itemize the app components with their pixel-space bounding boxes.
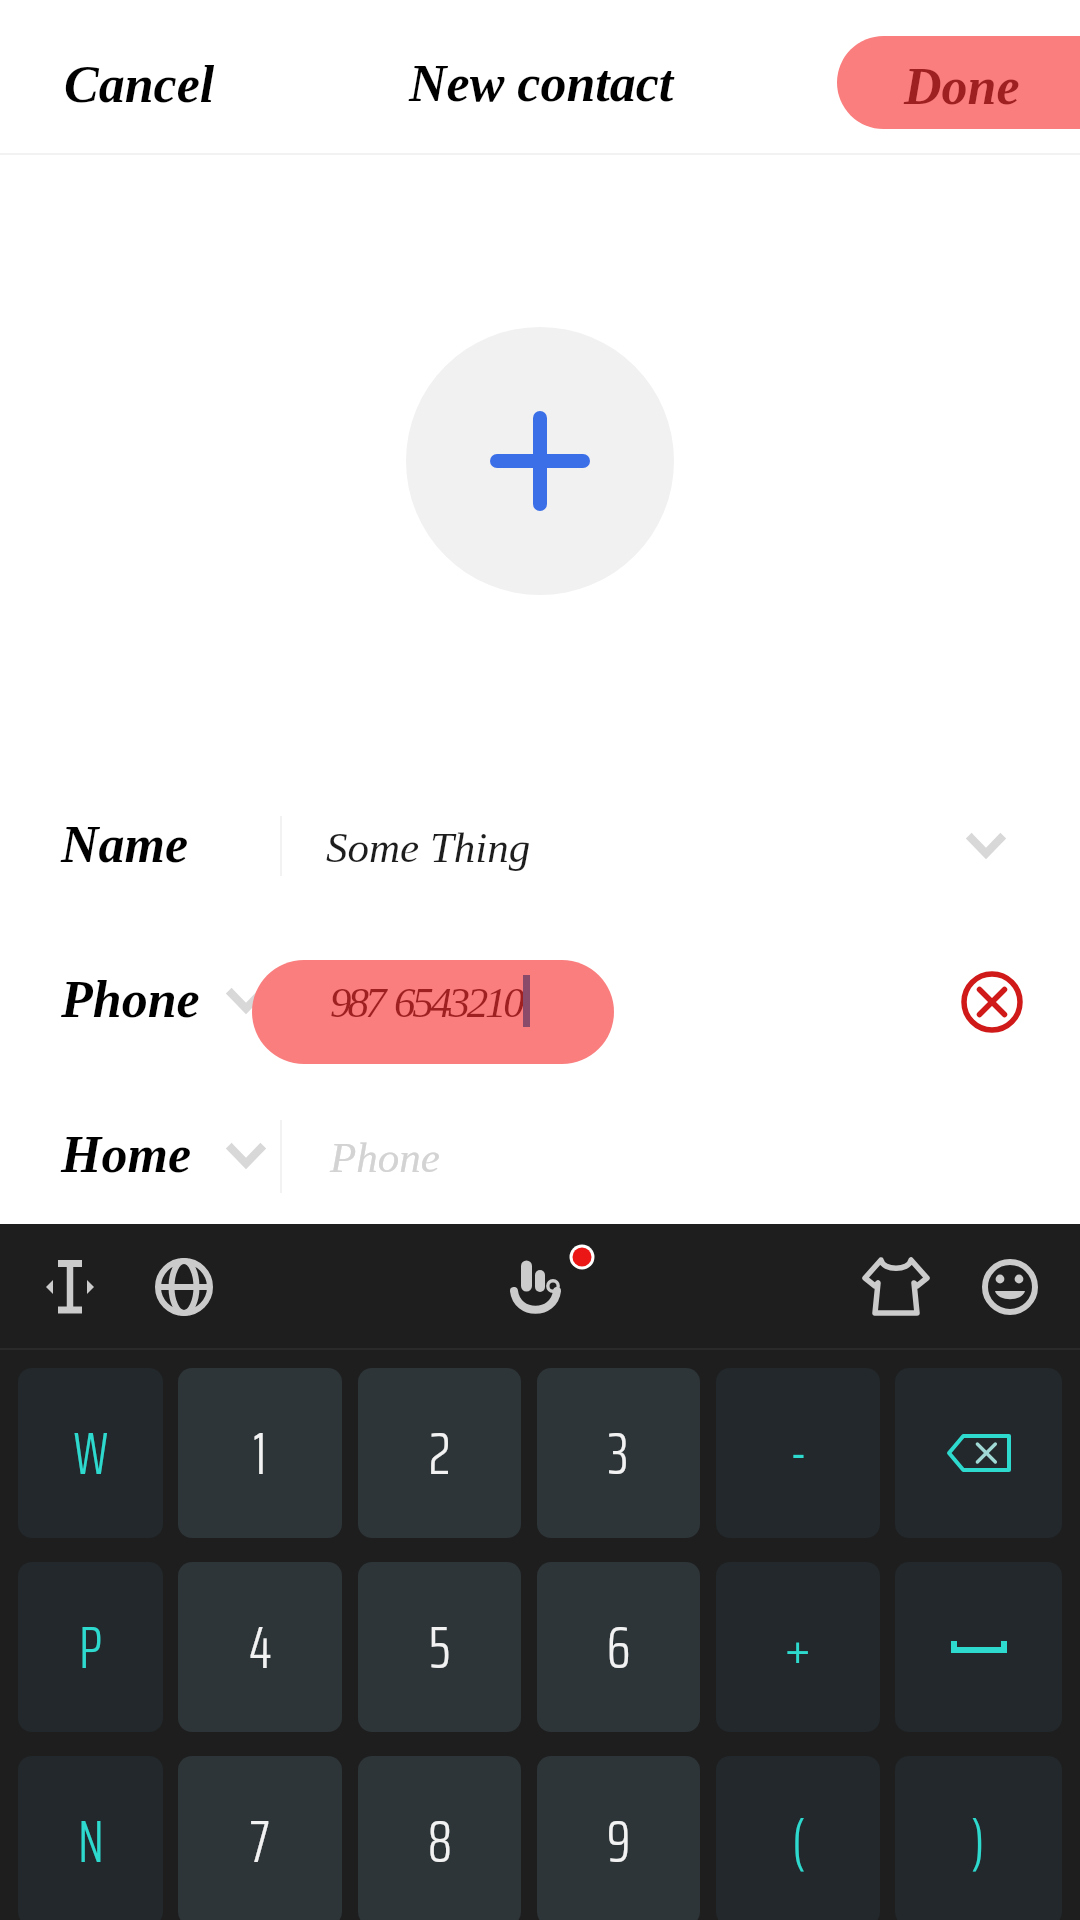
button[interactable]: 2 <box>358 1368 521 1538</box>
staticText: Name <box>61 816 189 874</box>
button[interactable]: 6 <box>537 1562 700 1732</box>
staticText: Done <box>904 58 1020 116</box>
button[interactable]: Change language <box>142 1245 226 1329</box>
button[interactable]: Add photo <box>406 327 674 595</box>
button[interactable]: ) <box>895 1756 1062 1920</box>
staticText: 6 <box>607 1600 631 1694</box>
staticText: 4 <box>249 1600 272 1694</box>
button[interactable]: P <box>18 1562 163 1732</box>
staticText: Cancel <box>64 56 215 114</box>
button[interactable]: Keyboard menu <box>496 1245 580 1329</box>
button[interactable]: Name <box>0 772 1080 927</box>
button[interactable]: ( <box>716 1756 880 1920</box>
button[interactable]: Emoji <box>968 1245 1052 1329</box>
button[interactable]: 8 <box>358 1756 521 1920</box>
staticText: + <box>784 1600 812 1694</box>
staticText: 3 <box>608 1406 629 1500</box>
staticText: Phone <box>330 1134 440 1182</box>
staticText: 6543210 <box>394 979 522 1027</box>
staticText: - <box>790 1406 807 1500</box>
button[interactable]: Space <box>895 1562 1062 1732</box>
button[interactable]: Phone <box>0 927 1080 1082</box>
staticText: P <box>79 1600 102 1694</box>
button[interactable]: 1 <box>178 1368 342 1538</box>
staticText: W <box>74 1406 108 1500</box>
button[interactable]: N <box>18 1756 163 1920</box>
button[interactable]: Move cursor <box>28 1245 112 1329</box>
button[interactable]: Themes <box>853 1245 937 1329</box>
staticText: 1 <box>253 1406 267 1500</box>
staticText: 8 <box>428 1794 452 1888</box>
staticText: New contact <box>409 55 674 113</box>
button[interactable]: Backspace <box>895 1368 1062 1538</box>
button[interactable]: Home <box>0 1082 1080 1224</box>
staticText: Some Thing <box>326 824 531 872</box>
staticText: ) <box>972 1794 985 1888</box>
button[interactable]: - <box>716 1368 880 1538</box>
button[interactable]: Clear phone number <box>958 968 1026 1036</box>
button[interactable]: W <box>18 1368 163 1538</box>
staticText: 2 <box>429 1406 451 1500</box>
staticText: ( <box>792 1794 805 1888</box>
staticText: Home <box>61 1126 191 1184</box>
staticText: 9 <box>607 1794 631 1888</box>
button[interactable]: 7 <box>178 1756 342 1920</box>
staticText: 5 <box>429 1600 451 1694</box>
button[interactable]: 9 <box>537 1756 700 1920</box>
button[interactable]: 3 <box>537 1368 700 1538</box>
staticText: 7 <box>250 1794 270 1888</box>
staticText: 987 <box>330 979 383 1027</box>
button[interactable]: Done <box>837 36 1080 129</box>
button[interactable]: 5 <box>358 1562 521 1732</box>
button[interactable]: 4 <box>178 1562 342 1732</box>
button[interactable]: + <box>716 1562 880 1732</box>
staticText: N <box>78 1794 104 1888</box>
button[interactable]: Cancel <box>22 24 254 132</box>
staticText: Phone <box>61 971 200 1029</box>
